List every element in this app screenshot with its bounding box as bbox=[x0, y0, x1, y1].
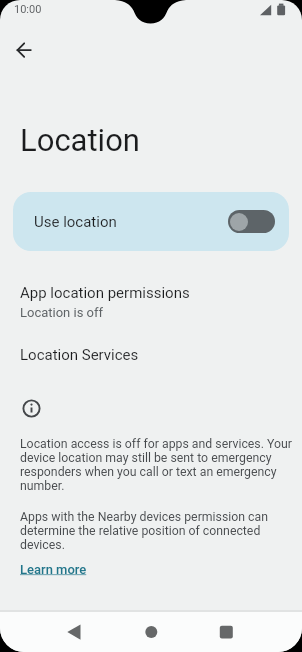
staticText: Location access is off for apps and serv… bbox=[20, 437, 292, 493]
button[interactable]: Learn more bbox=[20, 562, 87, 577]
staticText: Apps with the Nearby devices permission … bbox=[20, 510, 269, 552]
button[interactable] bbox=[212, 618, 240, 646]
button[interactable] bbox=[137, 618, 165, 646]
staticText: Location is off bbox=[20, 305, 104, 320]
button[interactable] bbox=[60, 620, 88, 648]
button[interactable]: App location permissions bbox=[0, 278, 302, 324]
button[interactable]: Use location bbox=[13, 192, 289, 251]
staticText: App location permissions bbox=[20, 284, 190, 302]
staticText: Location bbox=[20, 122, 140, 158]
button[interactable]: Location Services bbox=[0, 338, 302, 368]
staticText: Learn more bbox=[20, 562, 87, 577]
button[interactable] bbox=[8, 36, 38, 66]
staticText: Location Services bbox=[20, 346, 139, 364]
staticText: Use location bbox=[34, 213, 117, 231]
staticText: 10:00 bbox=[14, 3, 42, 16]
